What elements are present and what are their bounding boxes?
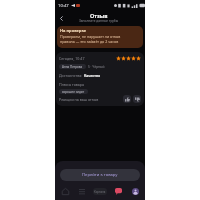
staticText: Отзыв [90,12,108,19]
staticText: S · Чёрный [88,65,105,69]
staticText: Плюсы товара [59,82,85,87]
staticText: Проверяем, не нарушает ли отзыв правила … [60,34,121,44]
button[interactable]: Chat [110,184,126,198]
staticText: Сегодня, 10:47 [59,56,85,61]
staticText: Достоинства: [59,73,84,78]
button[interactable]: Home [57,184,73,198]
staticText: Перейти к товару [82,172,118,178]
button[interactable]: Profile [127,184,143,198]
button[interactable]: Cart [92,184,108,198]
staticText: 10:47 [58,3,69,9]
staticText: хорошее сидит [62,90,85,94]
button[interactable]: Catalog [74,184,90,198]
staticText: Качество [84,73,101,78]
staticText: Реакции на ваш отзыв [59,97,99,102]
button[interactable]: Back [56,13,66,23]
button[interactable]: Dislike [133,95,141,103]
staticText: Корзина [94,190,106,194]
staticText: Анна Петрова [62,65,83,69]
staticText: На проверке [60,28,87,33]
staticText: Заполните данные трубы [79,19,119,23]
button[interactable]: Like [123,95,131,103]
button[interactable]: Перейти к товару [60,169,140,181]
